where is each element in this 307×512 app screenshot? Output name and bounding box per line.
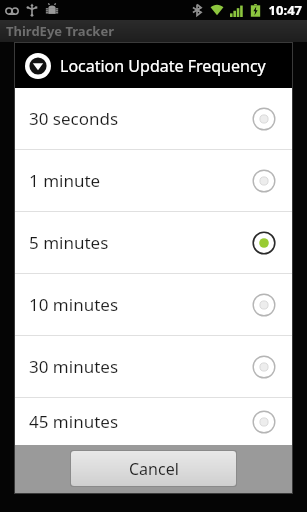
button[interactable]: 10 minutes (15, 274, 292, 335)
staticText: 10 minutes (29, 293, 252, 316)
button[interactable]: 30 minutes (15, 336, 292, 397)
staticText: 10:47 (268, 1, 302, 19)
staticText: 1 minute (29, 169, 252, 192)
staticText: Cancel (129, 458, 179, 480)
button[interactable]: Cancel (71, 451, 236, 486)
button[interactable]: 5 minutes (15, 212, 292, 273)
staticText: 30 minutes (29, 355, 252, 378)
staticText: Location Update Frequency (60, 55, 266, 77)
staticText: ThirdEye Tracker (6, 22, 114, 40)
staticText: 30 seconds (29, 107, 252, 130)
button[interactable]: 45 minutes (15, 398, 292, 445)
staticText: 5 minutes (29, 231, 252, 254)
staticText: 45 minutes (29, 410, 252, 433)
button[interactable]: 1 minute (15, 150, 292, 211)
button[interactable]: 30 seconds (15, 88, 292, 149)
